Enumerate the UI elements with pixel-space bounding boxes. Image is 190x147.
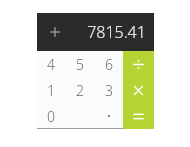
staticText: 2 (76, 81, 84, 100)
button[interactable]: Divide (123, 51, 154, 77)
button[interactable]: 0 (37, 103, 65, 129)
staticText: 1 (47, 81, 55, 100)
staticText: 3 (105, 81, 113, 100)
button[interactable]: Equals (123, 103, 154, 129)
button[interactable]: Current operator plus (45, 22, 65, 42)
staticText: 0 (47, 107, 55, 126)
button[interactable]: Multiply (123, 77, 154, 103)
button[interactable]: 4 (37, 51, 65, 77)
button[interactable]: 5 (65, 51, 94, 77)
button[interactable]: 7815.41 (87, 21, 146, 43)
button[interactable]: Decimal point (94, 103, 123, 129)
staticText: 5 (76, 55, 84, 74)
button[interactable]: 3 (94, 77, 123, 103)
button[interactable]: 2 (65, 77, 94, 103)
staticText: 7815.41 (87, 21, 146, 43)
staticText: 6 (105, 55, 113, 74)
staticText: 4 (47, 55, 55, 74)
button[interactable]: 6 (94, 51, 123, 77)
button[interactable]: 1 (37, 77, 65, 103)
